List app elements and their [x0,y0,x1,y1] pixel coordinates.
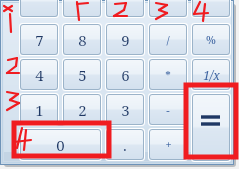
button[interactable]: - [149,94,187,125]
staticText: . [123,135,127,155]
staticText: 1/x [203,67,220,83]
button[interactable]: Function key 5 [192,0,230,17]
button[interactable]: Function key 4 [149,0,187,17]
staticText: 8 [78,30,87,50]
staticText: 9 [121,30,130,50]
button[interactable]: % [192,24,230,55]
button[interactable]: Equals [192,94,230,161]
button[interactable]: Function key 1 [20,0,58,17]
staticText: 6 [121,65,130,85]
button[interactable]: 1/x [192,59,230,90]
button[interactable]: . [106,129,144,160]
staticText: * [165,67,171,82]
staticText: - [166,102,170,117]
button[interactable]: / [149,24,187,55]
staticText: / [166,32,170,47]
button[interactable]: 1 [20,94,58,125]
staticText: 0 [56,135,65,155]
button[interactable]: 9 [106,24,144,55]
button[interactable]: 5 [63,59,101,90]
staticText: 1 [35,100,44,120]
button[interactable]: 2 [63,94,101,125]
button[interactable]: 4 [20,59,58,90]
button[interactable]: 6 [106,59,144,90]
button[interactable]: Function key 2 [63,0,101,17]
button[interactable]: 8 [63,24,101,55]
button[interactable]: * [149,59,187,90]
staticText: 2 [78,100,87,120]
button[interactable]: Function key 3 [106,0,144,17]
staticText: % [206,32,216,47]
staticText: + [165,137,172,152]
button[interactable]: 3 [106,94,144,125]
button[interactable]: 7 [20,24,58,55]
staticText: 3 [121,100,130,120]
staticText: 4 [35,65,44,85]
staticText: 7 [35,30,44,50]
button[interactable]: + [149,129,187,160]
button[interactable]: 0 [20,129,101,160]
staticText: 5 [78,65,87,85]
